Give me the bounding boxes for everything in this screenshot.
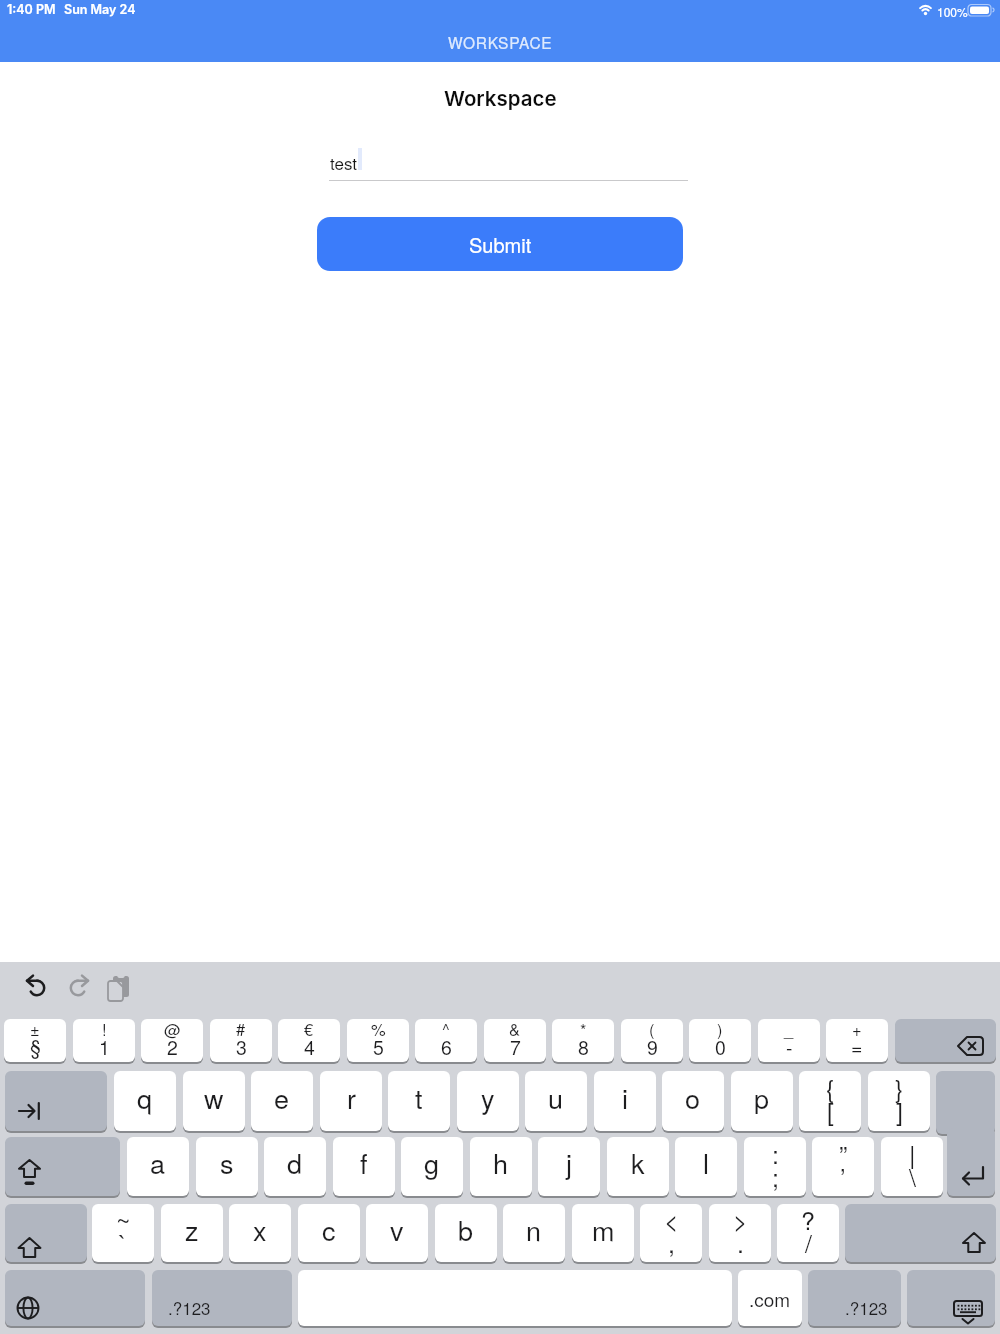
button[interactable]: | — [881, 1137, 943, 1196]
staticText: b — [458, 1210, 474, 1249]
button[interactable] — [5, 1270, 145, 1326]
button[interactable]: .com — [738, 1270, 802, 1326]
button[interactable] — [5, 1071, 107, 1131]
button[interactable]: ! — [73, 1019, 135, 1062]
staticText: WORKSPACE — [448, 31, 553, 53]
staticText: ) — [717, 1019, 723, 1041]
button[interactable]: r — [320, 1071, 382, 1131]
button[interactable]: € — [278, 1019, 340, 1062]
button[interactable]: ” — [812, 1137, 874, 1196]
staticText: , — [668, 1224, 675, 1260]
staticText: 100% — [937, 3, 968, 20]
staticText: ; — [772, 1158, 779, 1194]
button[interactable]: q — [114, 1071, 176, 1131]
staticText: @ — [164, 1019, 181, 1041]
staticText: n — [526, 1210, 542, 1249]
button[interactable]: + — [826, 1019, 888, 1062]
staticText: u — [548, 1078, 564, 1117]
staticText: ! — [102, 1019, 107, 1041]
staticText: > — [733, 1204, 748, 1237]
button[interactable] — [329, 140, 688, 182]
button[interactable]: ? — [777, 1204, 839, 1262]
button[interactable]: % — [347, 1019, 409, 1062]
button[interactable]: l — [675, 1137, 737, 1196]
staticText: * — [580, 1019, 587, 1041]
staticText: j — [566, 1143, 572, 1182]
button[interactable]: > — [709, 1204, 771, 1262]
staticText: i — [622, 1078, 628, 1117]
button[interactable]: # — [210, 1019, 272, 1062]
button[interactable] — [64, 973, 92, 1001]
staticText: - — [786, 1033, 793, 1061]
button[interactable]: : — [744, 1137, 806, 1196]
button[interactable]: x — [229, 1204, 291, 1262]
button[interactable]: j — [538, 1137, 600, 1196]
staticText: ± — [30, 1019, 40, 1041]
button[interactable]: ~ — [92, 1204, 154, 1262]
button[interactable]: .?123 — [808, 1270, 901, 1326]
staticText: s — [220, 1143, 234, 1182]
button[interactable]: n — [503, 1204, 565, 1262]
button[interactable]: w — [183, 1071, 245, 1131]
button[interactable]: v — [366, 1204, 428, 1262]
button[interactable]: z — [161, 1204, 223, 1262]
staticText: Workspace — [444, 86, 557, 111]
button[interactable]: * — [552, 1019, 614, 1062]
button[interactable]: @ — [141, 1019, 203, 1062]
button[interactable]: p — [731, 1071, 793, 1131]
staticText: 6 — [441, 1033, 452, 1061]
staticText: p — [754, 1078, 770, 1117]
button[interactable]: ± — [4, 1019, 66, 1062]
button[interactable]: i — [594, 1071, 656, 1131]
button[interactable]: a — [127, 1137, 189, 1196]
button[interactable]: h — [470, 1137, 532, 1196]
button[interactable]: k — [607, 1137, 669, 1196]
button[interactable] — [845, 1204, 996, 1262]
button[interactable]: ( — [621, 1019, 683, 1062]
staticText: : — [772, 1137, 779, 1171]
staticText: } — [895, 1071, 904, 1105]
button[interactable]: g — [401, 1137, 463, 1196]
staticText: .?123 — [845, 1295, 888, 1319]
button[interactable]: d — [264, 1137, 326, 1196]
staticText: ” — [839, 1137, 848, 1171]
button[interactable]: u — [525, 1071, 587, 1131]
staticText: & — [509, 1019, 521, 1041]
button[interactable] — [22, 973, 50, 1001]
staticText: + — [852, 1019, 862, 1041]
button[interactable]: _ — [758, 1019, 820, 1062]
staticText: h — [493, 1143, 509, 1182]
button[interactable]: b — [435, 1204, 497, 1262]
button[interactable]: c — [298, 1204, 360, 1262]
button[interactable]: s — [196, 1137, 258, 1196]
staticText: r — [347, 1078, 356, 1117]
button[interactable]: < — [640, 1204, 702, 1262]
button[interactable] — [907, 1270, 995, 1326]
button[interactable]: f — [333, 1137, 395, 1196]
button[interactable]: t — [388, 1071, 450, 1131]
button[interactable]: y — [457, 1071, 519, 1131]
button[interactable]: } — [868, 1071, 930, 1131]
button[interactable] — [947, 1128, 995, 1196]
button[interactable] — [895, 1019, 996, 1062]
button[interactable]: m — [572, 1204, 634, 1262]
button[interactable] — [5, 1137, 120, 1196]
staticText: { — [826, 1071, 835, 1105]
button[interactable]: { — [799, 1071, 861, 1131]
button[interactable]: ) — [689, 1019, 751, 1062]
button[interactable]: e — [251, 1071, 313, 1131]
staticText: o — [685, 1078, 701, 1117]
button[interactable]: .?123 — [152, 1270, 292, 1326]
staticText: e — [274, 1078, 290, 1117]
button[interactable] — [104, 971, 136, 1002]
button[interactable]: & — [484, 1019, 546, 1062]
staticText: < — [664, 1204, 679, 1237]
button[interactable]: o — [662, 1071, 724, 1131]
button[interactable] — [5, 1204, 87, 1262]
staticText: 8 — [578, 1033, 589, 1061]
button[interactable]: Submit — [317, 217, 683, 271]
staticText: k — [631, 1143, 645, 1182]
button[interactable]: ^ — [415, 1019, 477, 1062]
